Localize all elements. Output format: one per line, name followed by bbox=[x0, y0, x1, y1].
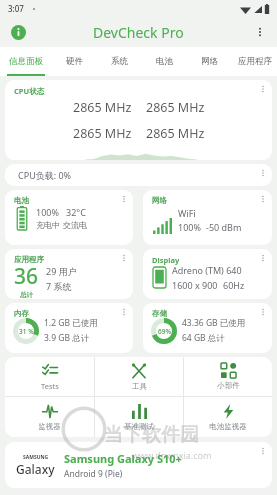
button[interactable]: CPU负载: 0% bbox=[5, 164, 272, 186]
staticText: 43.36 GB 已使用 bbox=[182, 317, 246, 329]
staticText: 硬件 bbox=[66, 56, 83, 67]
button[interactable]: Card menu bbox=[254, 164, 272, 182]
staticText: 应用程序 bbox=[238, 56, 272, 67]
staticText: DevCheck Pro bbox=[93, 23, 184, 42]
staticText: Tests bbox=[41, 381, 59, 391]
staticText: 1.2 GB 已使用 bbox=[44, 317, 98, 329]
button[interactable]: Card menu bbox=[254, 190, 272, 208]
button[interactable]: 基准测试 bbox=[95, 397, 183, 437]
button[interactable]: 电池监视器 bbox=[184, 397, 272, 437]
staticText: 2865 MHz bbox=[146, 125, 205, 142]
button[interactable]: 应用程序 bbox=[232, 47, 277, 76]
staticText: 交流电 bbox=[63, 220, 87, 230]
staticText: 监视器 bbox=[38, 422, 61, 431]
staticText: 2865 MHz bbox=[73, 99, 132, 116]
button[interactable]: 硬件 bbox=[52, 47, 97, 76]
staticText: 电池 bbox=[14, 196, 29, 205]
staticText: 电池 bbox=[156, 56, 173, 67]
button[interactable]: 小部件 bbox=[184, 357, 272, 396]
button[interactable]: 信息面板 bbox=[0, 47, 52, 76]
button[interactable]: 31 % bbox=[5, 303, 133, 353]
button[interactable]: 网络 bbox=[187, 47, 232, 76]
button[interactable]: 100% bbox=[5, 190, 133, 245]
button[interactable]: SAMSUNG bbox=[5, 442, 272, 488]
staticText: Samsung Galaxy S10+ bbox=[64, 451, 182, 466]
staticText: 充电中 bbox=[36, 220, 60, 230]
button[interactable]: 系统 bbox=[97, 47, 142, 76]
button[interactable]: 监视器 bbox=[5, 397, 94, 437]
staticText: 64 GB 总计 bbox=[182, 332, 225, 344]
staticText: 3.9 GB 总计 bbox=[44, 332, 90, 344]
staticText: 存储 bbox=[152, 309, 167, 318]
staticText: 电池监视器 bbox=[209, 422, 247, 431]
button[interactable]: Card menu bbox=[115, 190, 133, 208]
staticText: 31 % bbox=[19, 327, 34, 336]
staticText: WiFi bbox=[178, 207, 196, 219]
button[interactable]: Card menu bbox=[254, 442, 272, 460]
staticText: 工具 bbox=[132, 382, 147, 391]
staticText: 总计 bbox=[20, 291, 33, 299]
button[interactable]: Tests bbox=[5, 357, 94, 396]
staticText: 2865 MHz bbox=[73, 125, 132, 142]
staticText: CPU负载: 0% bbox=[18, 169, 72, 181]
staticText: 1600 x 900 bbox=[172, 279, 218, 291]
staticText: Adreno (TM) 640 bbox=[172, 264, 242, 276]
button[interactable]: 电池 bbox=[142, 47, 187, 76]
staticText: 信息面板 bbox=[9, 56, 43, 67]
staticText: 100% bbox=[36, 206, 59, 218]
staticText: -50 dBm bbox=[206, 221, 242, 233]
staticText: 网络 bbox=[201, 56, 218, 67]
button[interactable]: WiFi bbox=[143, 190, 272, 245]
staticText: www.downxia.com bbox=[132, 449, 212, 461]
staticText: 小部件 bbox=[217, 381, 240, 390]
button[interactable]: Card menu bbox=[254, 80, 272, 98]
staticText: 29 用户 bbox=[46, 265, 77, 277]
staticText: 3:07 bbox=[8, 3, 24, 14]
button[interactable]: Info bbox=[7, 21, 29, 43]
staticText: 应用程序 bbox=[14, 255, 44, 264]
button[interactable]: Card menu bbox=[254, 303, 272, 321]
button[interactable]: 工具 bbox=[95, 357, 183, 396]
staticText: SAMSUNG bbox=[23, 454, 49, 461]
staticText: 69% bbox=[158, 327, 171, 336]
staticText: 内存 bbox=[14, 309, 29, 318]
staticText: 网络 bbox=[152, 196, 167, 205]
staticText: Galaxy bbox=[16, 461, 55, 477]
staticText: 100% bbox=[178, 221, 201, 233]
staticText: Display bbox=[152, 255, 180, 265]
button[interactable]: Adreno (TM) 640 bbox=[143, 249, 272, 299]
button[interactable]: 36 bbox=[5, 249, 133, 299]
staticText: 7 系统 bbox=[46, 280, 72, 292]
staticText: 32°C bbox=[66, 206, 86, 218]
staticText: 36 bbox=[14, 262, 39, 291]
staticText: CPU状态 bbox=[14, 86, 45, 96]
button[interactable]: 69% bbox=[143, 303, 272, 353]
staticText: 2865 MHz bbox=[146, 99, 205, 116]
button[interactable]: 2865 MHz bbox=[5, 80, 272, 160]
staticText: 基准测试 bbox=[124, 422, 154, 431]
staticText: 当下软件园 bbox=[104, 423, 199, 447]
button[interactable]: Card menu bbox=[115, 249, 133, 267]
staticText: 系统 bbox=[111, 56, 128, 67]
staticText: 60Hz bbox=[223, 279, 245, 291]
button[interactable]: Card menu bbox=[115, 303, 133, 321]
button[interactable]: Card menu bbox=[254, 249, 272, 267]
button[interactable]: More options bbox=[249, 21, 271, 43]
staticText: Android 9 (Pie) bbox=[64, 468, 123, 480]
